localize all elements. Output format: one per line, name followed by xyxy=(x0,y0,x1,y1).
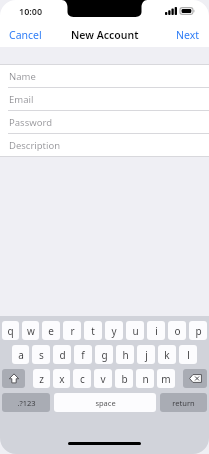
button[interactable]: Backspace xyxy=(183,369,207,388)
staticText: p xyxy=(195,324,202,338)
staticText: f xyxy=(81,348,85,362)
button[interactable]: Email xyxy=(0,88,209,111)
staticText: Next xyxy=(176,28,200,42)
staticText: b xyxy=(121,372,128,386)
staticText: g xyxy=(101,348,108,362)
button[interactable]: space xyxy=(54,393,156,412)
button[interactable]: q xyxy=(2,321,19,340)
button[interactable]: o xyxy=(168,321,186,340)
staticText: Email xyxy=(9,93,34,106)
staticText: 10:00 xyxy=(19,5,43,17)
staticText: Cancel xyxy=(9,28,42,42)
button[interactable]: Next xyxy=(167,22,209,47)
button[interactable]: v xyxy=(94,369,112,388)
staticText: h xyxy=(122,348,129,362)
staticText: v xyxy=(100,372,106,386)
button[interactable]: h xyxy=(116,345,134,364)
staticText: y xyxy=(111,324,117,338)
staticText: .?123 xyxy=(17,398,36,408)
staticText: Name xyxy=(9,70,36,83)
button[interactable]: i xyxy=(147,321,165,340)
staticText: Description xyxy=(9,139,61,152)
staticText: j xyxy=(145,348,148,362)
button[interactable]: z xyxy=(33,369,50,388)
staticText: m xyxy=(161,372,171,386)
button[interactable]: m xyxy=(157,369,175,388)
button[interactable]: n xyxy=(136,369,154,388)
button[interactable]: y xyxy=(105,321,123,340)
staticText: a xyxy=(18,348,24,362)
staticText: n xyxy=(142,372,149,386)
button[interactable]: d xyxy=(53,345,71,364)
button[interactable]: a xyxy=(12,345,29,364)
staticText: e xyxy=(48,324,54,338)
staticText: l xyxy=(187,348,190,362)
button[interactable]: x xyxy=(53,369,70,388)
staticText: q xyxy=(7,324,14,338)
staticText: w xyxy=(27,324,35,338)
button[interactable]: g xyxy=(95,345,113,364)
button[interactable]: k xyxy=(158,345,176,364)
button[interactable]: u xyxy=(126,321,144,340)
staticText: s xyxy=(39,348,44,362)
staticText: d xyxy=(59,348,66,362)
button[interactable]: w xyxy=(22,321,39,340)
staticText: New Account xyxy=(71,28,139,42)
staticText: k xyxy=(164,348,170,362)
staticText: u xyxy=(132,324,139,338)
button[interactable]: Password xyxy=(0,111,209,134)
button[interactable]: return xyxy=(160,393,207,412)
button[interactable]: Shift xyxy=(2,369,25,388)
button[interactable]: Cancel xyxy=(0,22,51,47)
button[interactable]: Name xyxy=(0,65,209,88)
staticText: c xyxy=(80,372,85,386)
button[interactable]: Description xyxy=(0,134,209,156)
button[interactable]: b xyxy=(115,369,133,388)
button[interactable]: c xyxy=(73,369,91,388)
button[interactable]: l xyxy=(179,345,197,364)
button[interactable]: t xyxy=(84,321,102,340)
staticText: Password xyxy=(9,116,52,129)
staticText: space xyxy=(95,398,116,408)
button[interactable]: p xyxy=(189,321,207,340)
staticText: r xyxy=(70,324,75,338)
button[interactable]: j xyxy=(137,345,155,364)
button[interactable]: e xyxy=(42,321,60,340)
button[interactable]: r xyxy=(63,321,81,340)
staticText: z xyxy=(39,372,44,386)
button[interactable]: f xyxy=(74,345,92,364)
button[interactable]: s xyxy=(32,345,50,364)
staticText: o xyxy=(174,324,181,338)
button[interactable]: .?123 xyxy=(2,393,50,412)
staticText: return xyxy=(172,398,195,408)
staticText: x xyxy=(59,372,65,386)
staticText: t xyxy=(91,324,95,338)
staticText: i xyxy=(155,324,158,338)
